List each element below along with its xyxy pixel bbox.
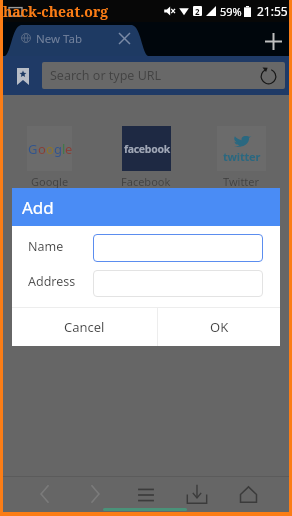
staticText: l: [62, 140, 65, 158]
staticText: twitter: [223, 149, 261, 164]
button[interactable]: Close tab: [115, 29, 133, 47]
staticText: Address: [28, 273, 76, 290]
staticText: Name: [28, 238, 64, 255]
button[interactable]: Reload: [258, 66, 278, 86]
button[interactable]: Forward: [79, 478, 111, 510]
button[interactable]: [93, 270, 263, 297]
button[interactable]: Home: [232, 478, 264, 510]
staticText: G: [28, 140, 38, 158]
staticText: hack-cheat.org: [3, 2, 109, 21]
button[interactable]: [93, 234, 263, 262]
staticText: Facebook: [121, 174, 171, 189]
button[interactable]: Search or type URL: [42, 62, 285, 89]
button[interactable]: twitter: [217, 126, 266, 171]
button[interactable]: OK: [158, 308, 280, 346]
button[interactable]: Downloads: [181, 478, 213, 510]
button[interactable]: Menu: [130, 479, 162, 511]
staticText: 59%: [220, 4, 242, 19]
staticText: 2: [195, 6, 200, 16]
staticText: Add: [22, 196, 54, 219]
staticText: Twitter: [223, 174, 260, 189]
staticText: 21:55: [257, 3, 288, 19]
button[interactable]: facebook: [122, 126, 171, 171]
button[interactable]: New tab: [260, 28, 287, 55]
staticText: Google: [31, 174, 69, 189]
button[interactable]: Cancel: [12, 308, 157, 346]
staticText: Search or type URL: [50, 67, 162, 84]
staticText: facebook: [124, 142, 170, 156]
button[interactable]: G: [27, 126, 72, 171]
button[interactable]: Bookmarks: [11, 64, 35, 88]
staticText: o: [46, 140, 54, 158]
staticText: Cancel: [64, 318, 105, 336]
staticText: o: [38, 140, 46, 158]
staticText: g: [54, 140, 62, 158]
staticText: OK: [210, 318, 229, 336]
button[interactable]: Back: [29, 478, 61, 510]
staticText: e: [65, 140, 72, 158]
staticText: New Tab: [36, 31, 83, 47]
